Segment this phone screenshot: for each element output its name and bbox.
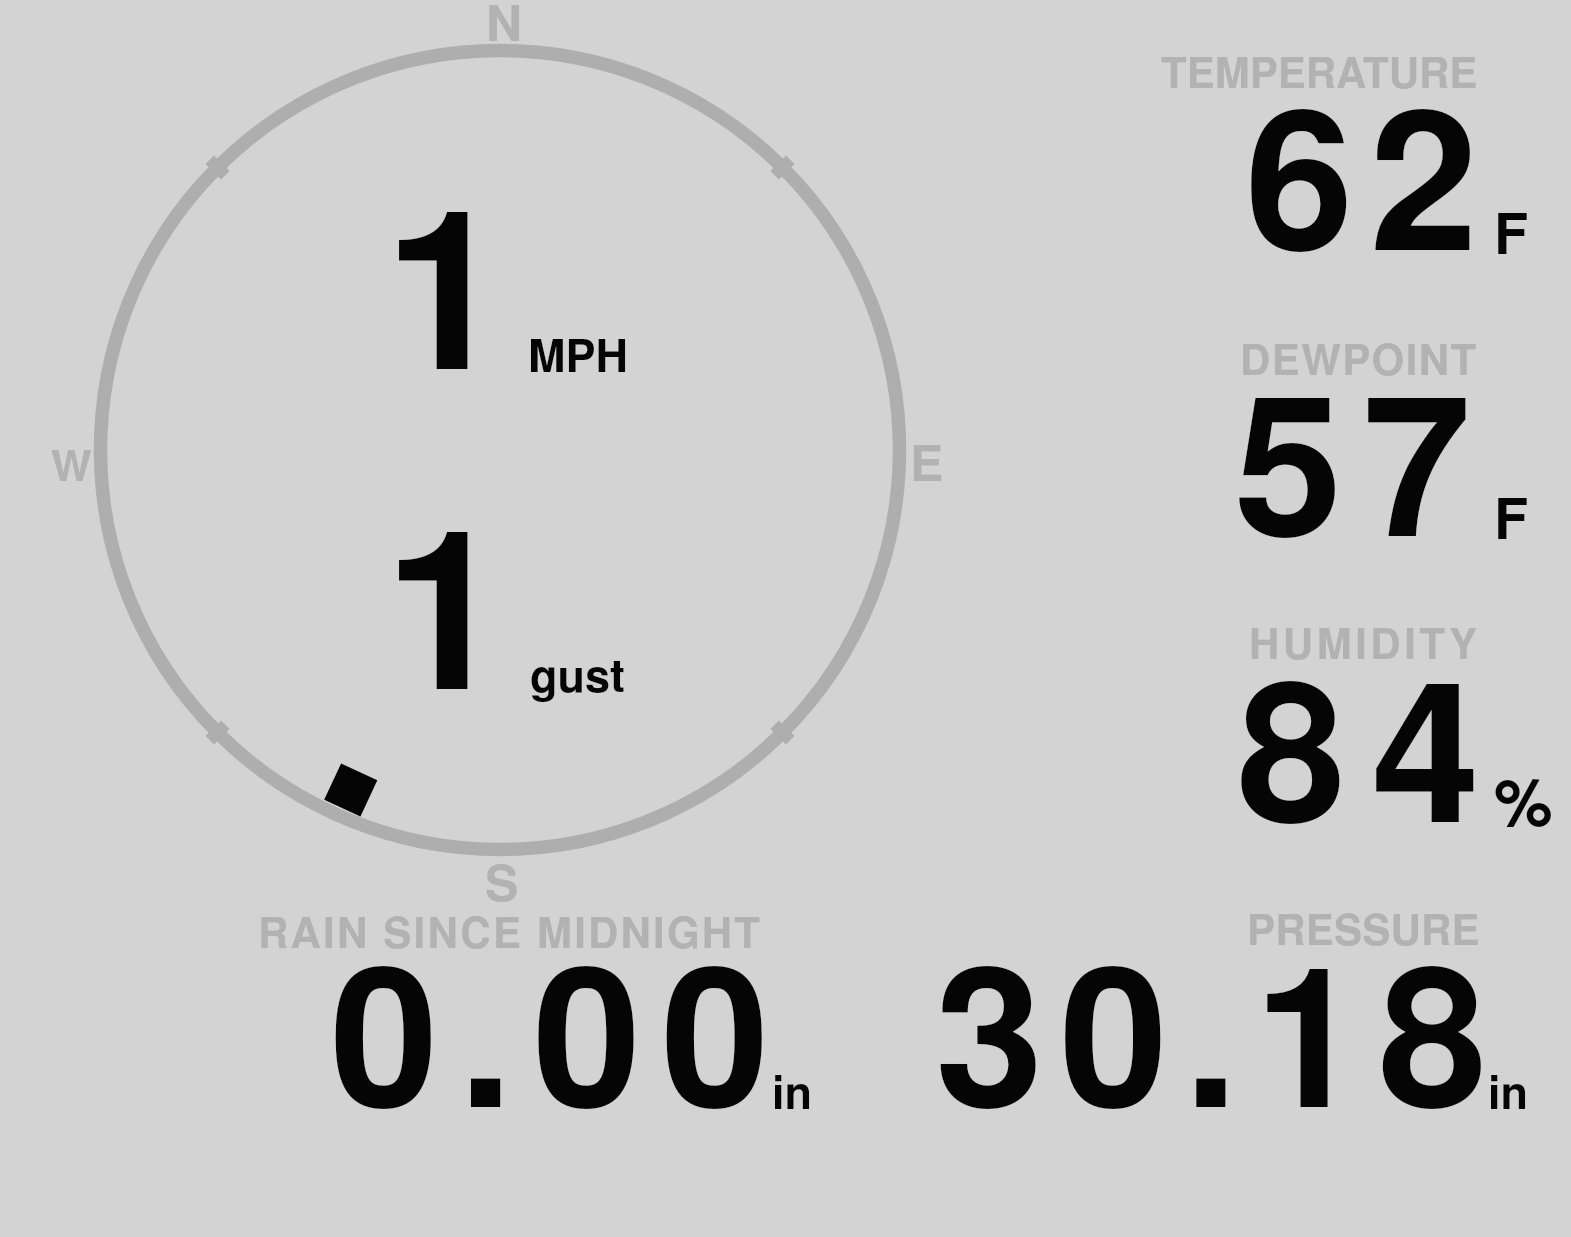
other: Wind direction compass dial xyxy=(0,0,1571,1237)
staticText: PRESSURE xyxy=(1247,898,1480,958)
staticText: 84 xyxy=(1237,603,1506,882)
staticText: MPH xyxy=(528,321,628,385)
staticText: gust xyxy=(530,641,625,705)
button[interactable]: HUMIDITY xyxy=(1249,612,1481,672)
staticText: F xyxy=(1494,191,1529,271)
staticText: W xyxy=(51,433,92,495)
staticText: DEWPOINT xyxy=(1240,328,1478,388)
staticText: 57 xyxy=(1234,317,1491,596)
button[interactable]: TEMPERATURE xyxy=(1161,41,1478,101)
staticText: % xyxy=(1494,752,1553,847)
staticText: E xyxy=(910,425,944,497)
staticText: 62 xyxy=(1245,31,1494,310)
staticText: HUMIDITY xyxy=(1249,612,1481,672)
staticText: S xyxy=(485,845,519,917)
staticText: 30.18 xyxy=(935,888,1503,1167)
staticText: TEMPERATURE xyxy=(1161,41,1478,101)
button[interactable]: PRESSURE xyxy=(1247,898,1480,958)
staticText: in xyxy=(772,1058,813,1122)
staticText: F xyxy=(1494,476,1529,556)
staticText: 1 xyxy=(384,120,523,436)
staticText: N xyxy=(486,0,523,57)
staticText: 0.00 xyxy=(330,888,790,1167)
button[interactable]: DEWPOINT xyxy=(1240,328,1478,388)
staticText: 1 xyxy=(384,440,523,756)
staticText: RAIN SINCE MIDNIGHT xyxy=(258,901,763,961)
staticText: in xyxy=(1488,1058,1529,1122)
button[interactable]: RAIN SINCE MIDNIGHT xyxy=(258,901,763,961)
